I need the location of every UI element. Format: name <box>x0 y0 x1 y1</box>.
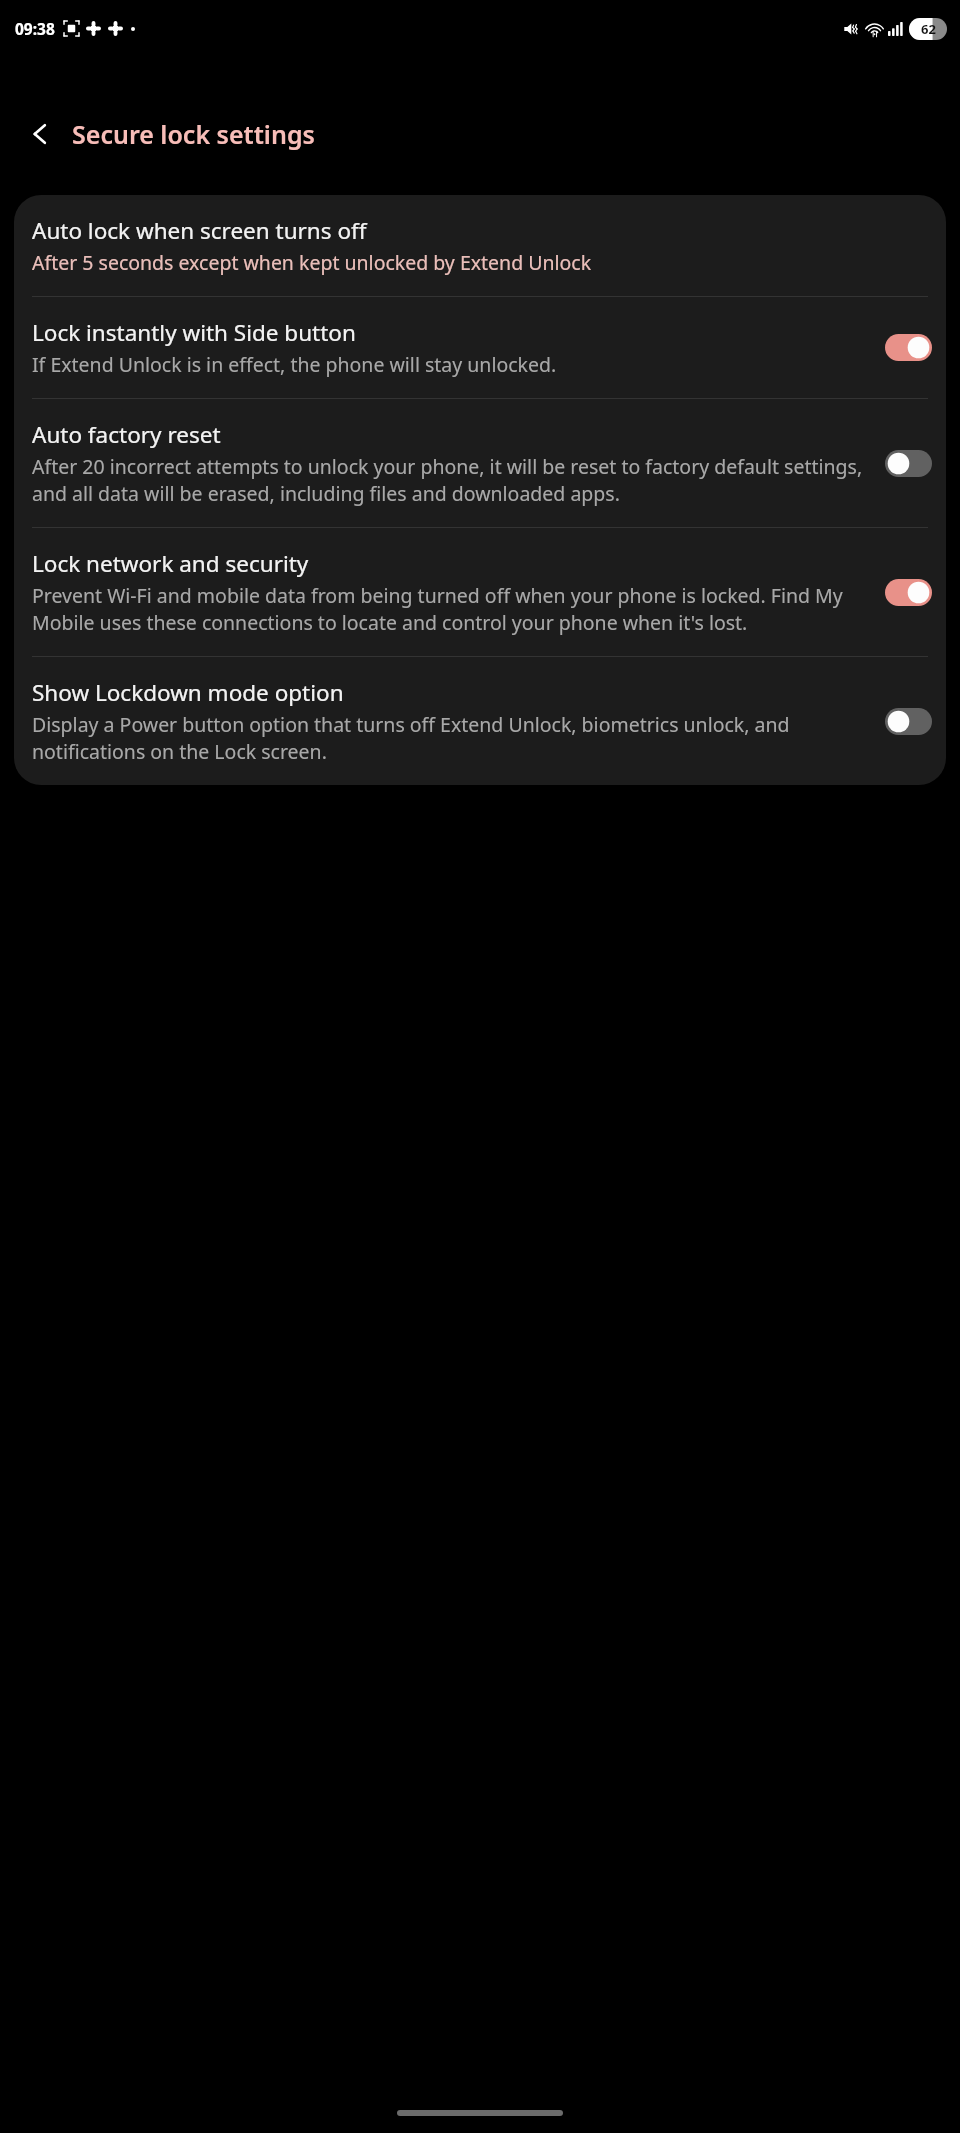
staticText: Lock instantly with Side button <box>32 317 356 348</box>
button[interactable]: Show Lockdown mode option <box>14 657 946 785</box>
button[interactable]: Toggle off <box>885 450 932 477</box>
staticText: After 20 incorrect attempts to unlock yo… <box>32 453 873 507</box>
button[interactable]: Toggle on <box>885 334 932 361</box>
button[interactable]: Back <box>16 110 64 158</box>
staticText: After 5 seconds except when kept unlocke… <box>32 249 592 276</box>
staticText: Prevent Wi-Fi and mobile data from being… <box>32 582 873 636</box>
button[interactable]: Auto factory reset <box>14 399 946 527</box>
staticText: Auto lock when screen turns off <box>32 215 367 246</box>
button[interactable]: Lock network and security <box>14 528 946 656</box>
staticText: Display a Power button option that turns… <box>32 711 873 765</box>
staticText: Auto factory reset <box>32 419 221 450</box>
staticText: 09:38 <box>15 18 55 39</box>
staticText: Lock network and security <box>32 548 309 579</box>
staticText: If Extend Unlock is in effect, the phone… <box>32 351 557 378</box>
button[interactable]: Toggle off <box>885 708 932 735</box>
button[interactable]: Toggle on <box>885 579 932 606</box>
staticText: Secure lock settings <box>72 117 315 151</box>
button[interactable]: Auto lock when screen turns off <box>14 195 946 296</box>
staticText: 62 <box>921 20 936 38</box>
button[interactable]: Lock instantly with Side button <box>14 297 946 398</box>
staticText: Show Lockdown mode option <box>32 677 344 708</box>
